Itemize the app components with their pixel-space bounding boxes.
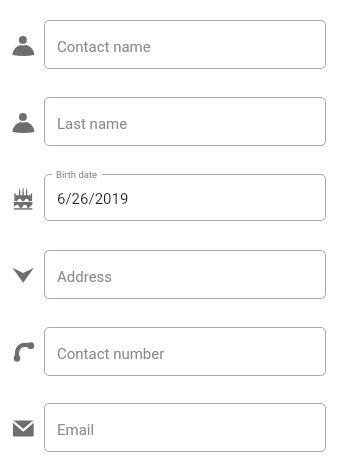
button[interactable]: Contact name (44, 20, 326, 69)
button[interactable]: Contact number (44, 327, 326, 376)
staticText: Birth date (56, 169, 98, 180)
staticText: Contact name (57, 38, 151, 56)
staticText: Email (57, 421, 95, 439)
staticText: Last name (57, 115, 128, 133)
button[interactable]: Last name (44, 97, 326, 146)
button[interactable]: Email (44, 403, 326, 452)
staticText: Contact number (57, 345, 165, 363)
button[interactable]: Address (44, 250, 326, 299)
staticText: Address (57, 268, 113, 286)
button[interactable]: 6/26/2019 (44, 174, 326, 221)
staticText: 6/26/2019 (57, 190, 129, 208)
